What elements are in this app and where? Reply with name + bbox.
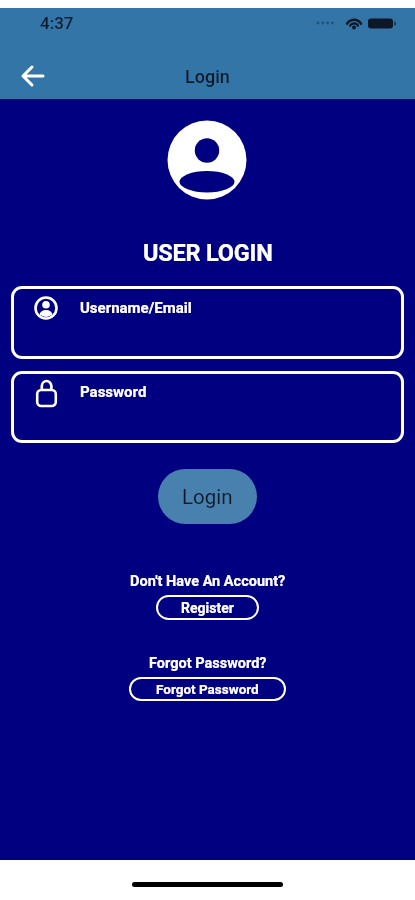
staticText: Don't Have An Account? [130,573,286,590]
staticText: 4:37 [40,13,74,33]
staticText: Register [181,600,234,616]
staticText: Password [80,383,147,401]
staticText: Login [185,66,230,87]
staticText: Forgot Password [156,681,259,697]
staticText: Forgot Password? [149,655,267,672]
staticText: USER LOGIN [143,239,273,267]
staticText: Username/Email [80,299,192,317]
staticText: Login [182,485,233,509]
